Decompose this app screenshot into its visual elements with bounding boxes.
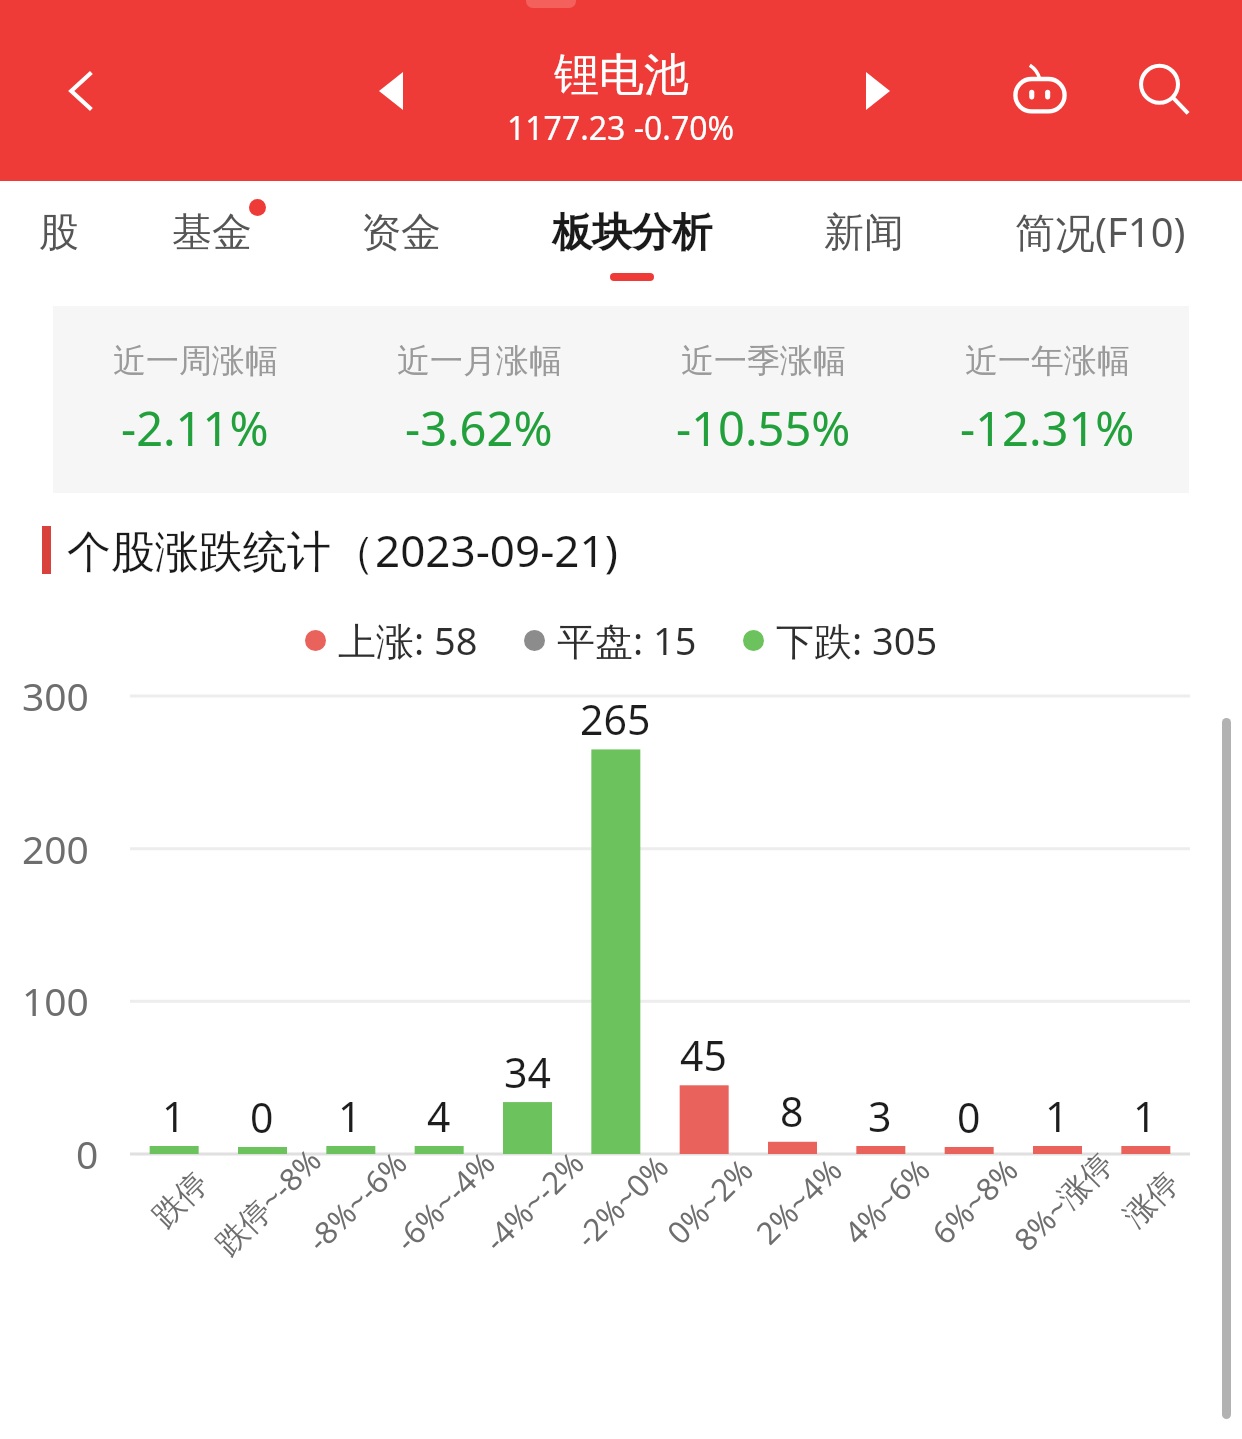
- staticText: 300: [22, 669, 89, 722]
- button[interactable]: 基金: [117, 181, 306, 306]
- staticText: 0: [957, 1089, 981, 1145]
- staticText: 资金: [361, 207, 441, 257]
- button[interactable]: 近一年涨幅: [905, 306, 1189, 493]
- staticText: -6%~-4%: [385, 1142, 504, 1260]
- staticText: 6%~8%: [922, 1149, 1026, 1253]
- staticText: 45: [680, 1027, 727, 1083]
- staticText: 4: [427, 1088, 451, 1144]
- staticText: 上涨: 58: [338, 614, 478, 666]
- staticText: 1: [1045, 1088, 1069, 1144]
- staticText: -2.11%: [121, 396, 269, 460]
- button[interactable]: 下跌: 305: [743, 614, 938, 666]
- staticText: 34: [504, 1044, 551, 1100]
- staticText: -8%~-6%: [297, 1142, 416, 1260]
- staticText: -2%~0%: [566, 1145, 677, 1256]
- staticText: 锂电池: [554, 47, 689, 104]
- button[interactable]: Back: [48, 56, 118, 126]
- staticText: 跌停: [144, 1164, 216, 1235]
- staticText: 近一季涨幅: [681, 340, 846, 382]
- staticText: 100: [22, 974, 89, 1027]
- staticText: 涨停: [1115, 1164, 1187, 1235]
- staticText: -4%~-2%: [474, 1142, 593, 1260]
- staticText: 0: [250, 1089, 274, 1145]
- button[interactable]: 资金: [306, 181, 495, 306]
- staticText: 板块分析: [552, 207, 712, 257]
- staticText: 平盘: 15: [557, 614, 697, 666]
- staticText: 新闻: [824, 207, 904, 257]
- button[interactable]: 新闻: [769, 181, 958, 306]
- button[interactable]: 近一周涨幅: [53, 306, 337, 493]
- button[interactable]: 简况(F10): [958, 181, 1242, 306]
- staticText: 1: [162, 1088, 186, 1144]
- button[interactable]: 上涨: 58: [305, 614, 478, 666]
- staticText: 3: [868, 1088, 892, 1144]
- staticText: 200: [22, 822, 89, 875]
- button[interactable]: Search: [1122, 49, 1206, 133]
- staticText: -10.55%: [676, 396, 851, 460]
- button[interactable]: 板块分析: [495, 181, 769, 306]
- staticText: 1: [338, 1088, 362, 1144]
- staticText: -12.31%: [960, 396, 1135, 460]
- staticText: -3.62%: [405, 396, 553, 460]
- button[interactable]: AI assistant: [998, 49, 1082, 133]
- button[interactable]: Next sector: [842, 55, 914, 127]
- staticText: 股: [39, 207, 79, 257]
- staticText: 近一年涨幅: [965, 340, 1130, 382]
- staticText: 8%~涨停: [1004, 1142, 1122, 1260]
- staticText: 跌停~-8%: [206, 1139, 330, 1263]
- staticText: 8: [780, 1083, 804, 1139]
- staticText: 1: [1133, 1088, 1157, 1144]
- staticText: 4%~6%: [834, 1149, 938, 1253]
- button[interactable]: 近一季涨幅: [621, 306, 905, 493]
- staticText: 1177.23 -0.70%: [507, 106, 735, 150]
- button[interactable]: 近一月涨幅: [337, 306, 621, 493]
- button[interactable]: 平盘: 15: [524, 614, 697, 666]
- staticText: 下跌: 305: [776, 614, 938, 666]
- staticText: 265: [580, 691, 651, 747]
- staticText: 近一月涨幅: [397, 340, 562, 382]
- staticText: 0%~2%: [657, 1149, 761, 1253]
- button[interactable]: Previous sector: [355, 55, 427, 127]
- staticText: 2%~4%: [746, 1149, 850, 1253]
- button[interactable]: 股: [0, 181, 117, 306]
- staticText: 简况(F10): [1015, 204, 1186, 259]
- staticText: 0: [76, 1127, 99, 1180]
- staticText: 基金: [172, 207, 252, 257]
- staticText: 近一周涨幅: [113, 340, 278, 382]
- staticText: 个股涨跌统计（2023-09-21): [67, 520, 618, 580]
